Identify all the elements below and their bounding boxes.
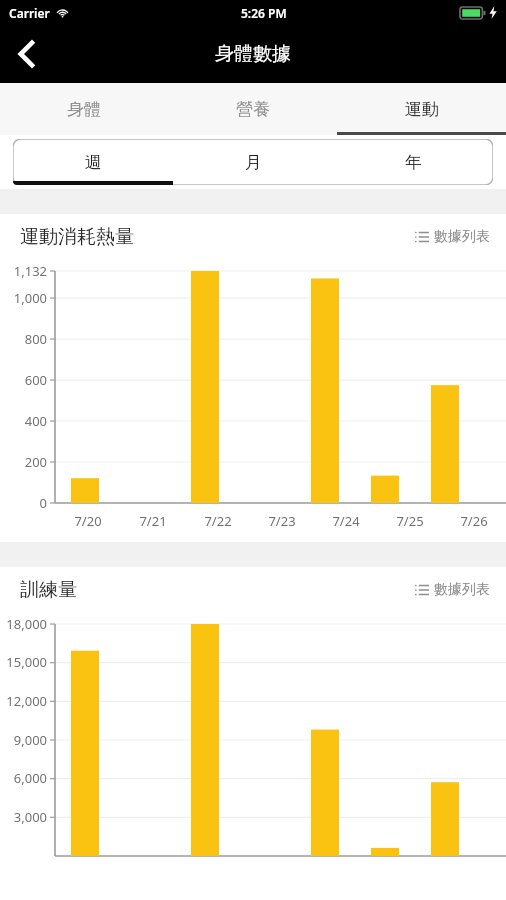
staticText: 數據列表 bbox=[434, 228, 490, 246]
staticText: 800 bbox=[24, 330, 47, 348]
button[interactable]: 身體 bbox=[0, 83, 168, 135]
staticText: 12,000 bbox=[6, 692, 47, 710]
staticText: 身體數據 bbox=[215, 42, 291, 66]
staticText: 7/22 bbox=[204, 512, 232, 530]
staticText: 訓練量 bbox=[20, 578, 77, 602]
staticText: 營養 bbox=[236, 99, 270, 120]
button[interactable]: Back bbox=[0, 25, 54, 83]
staticText: 身體 bbox=[67, 99, 101, 120]
staticText: 週 bbox=[85, 152, 102, 173]
staticText: 7/21 bbox=[139, 512, 167, 530]
staticText: 9,000 bbox=[13, 731, 47, 749]
button[interactable]: 數據列表 bbox=[411, 575, 494, 605]
staticText: 7/20 bbox=[74, 512, 102, 530]
staticText: 7/23 bbox=[268, 512, 296, 530]
staticText: 18,000 bbox=[6, 615, 47, 633]
staticText: 3,000 bbox=[13, 808, 47, 826]
button[interactable]: 數據列表 bbox=[411, 222, 494, 252]
staticText: 6,000 bbox=[13, 769, 47, 787]
button[interactable]: 年 bbox=[333, 139, 493, 185]
staticText: 運動消耗熱量 bbox=[20, 225, 134, 249]
button[interactable]: 運動 bbox=[337, 83, 506, 135]
staticText: 200 bbox=[24, 453, 47, 471]
staticText: 月 bbox=[245, 152, 262, 173]
staticText: 7/25 bbox=[396, 512, 424, 530]
button[interactable]: 週 bbox=[13, 139, 173, 185]
staticText: 400 bbox=[24, 412, 47, 430]
staticText: 年 bbox=[405, 152, 422, 173]
staticText: 600 bbox=[24, 371, 47, 389]
staticText: 1,000 bbox=[13, 289, 47, 307]
staticText: 5:26 PM bbox=[241, 5, 287, 21]
staticText: 7/24 bbox=[332, 512, 360, 530]
button[interactable]: 月 bbox=[173, 139, 333, 185]
staticText: 數據列表 bbox=[434, 581, 490, 599]
staticText: Carrier bbox=[9, 5, 50, 21]
staticText: 0 bbox=[39, 494, 47, 512]
staticText: 7/26 bbox=[460, 512, 488, 530]
button[interactable]: 營養 bbox=[168, 83, 337, 135]
staticText: 運動 bbox=[405, 99, 439, 120]
staticText: 1,132 bbox=[13, 262, 47, 280]
staticText: 15,000 bbox=[6, 653, 47, 671]
